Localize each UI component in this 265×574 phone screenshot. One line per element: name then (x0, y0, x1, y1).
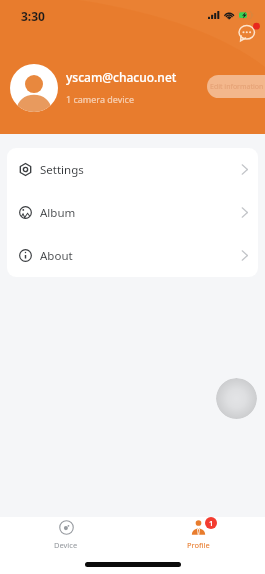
button[interactable]: About (7, 234, 258, 277)
staticText: yscam@chacuo.net (66, 69, 177, 85)
button[interactable]: Messages (238, 23, 264, 45)
button[interactable]: Device (0, 517, 132, 555)
staticText: Album (40, 205, 76, 221)
staticText: 3:30 (21, 8, 45, 24)
button[interactable]: Settings (7, 148, 258, 191)
staticText: 1 (209, 518, 214, 528)
button[interactable]: Loading (216, 378, 257, 419)
button[interactable]: 1 (132, 517, 265, 555)
button[interactable]: Edit information (207, 75, 265, 98)
staticText: Settings (40, 162, 84, 178)
staticText: Device (54, 540, 78, 550)
staticText: 1 camera device (66, 93, 134, 105)
staticText: Profile (187, 540, 210, 550)
staticText: Edit information (210, 82, 264, 92)
button[interactable]: Album (7, 191, 258, 234)
staticText: About (40, 248, 73, 264)
